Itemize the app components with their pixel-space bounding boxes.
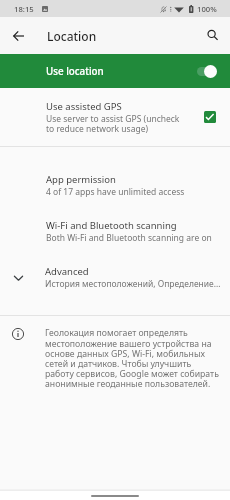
staticText: Both Wi-Fi and Bluetooth scanning are on — [46, 232, 212, 244]
staticText: 100% — [197, 4, 217, 14]
staticText: Use server to assist GPS (uncheck to red… — [46, 113, 180, 135]
button[interactable]: Navigate up — [5, 23, 31, 49]
staticText: Геолокация помогает определять местополо… — [45, 327, 221, 390]
staticText: Use location — [46, 65, 104, 78]
staticText: История местоположений, Определение… — [45, 278, 221, 290]
staticText: Wi-Fi and Bluetooth scanning — [46, 219, 177, 232]
staticText: Location — [47, 28, 97, 44]
button[interactable]: Search — [200, 23, 226, 49]
other: Home gesture bar — [91, 495, 139, 497]
button[interactable]: Wi-Fi and Bluetooth scanning — [0, 208, 230, 254]
staticText: 4 of 17 apps have unlimited access — [46, 186, 185, 198]
button[interactable]: Advanced — [0, 254, 230, 300]
button[interactable]: Use assisted GPS — [0, 88, 230, 146]
staticText: Advanced — [45, 265, 89, 278]
staticText: Use assisted GPS — [46, 100, 122, 113]
staticText: App permission — [46, 173, 116, 186]
staticText: 18:15 — [14, 4, 34, 14]
button[interactable]: App permission — [0, 162, 230, 208]
button[interactable]: Use location — [0, 54, 230, 88]
